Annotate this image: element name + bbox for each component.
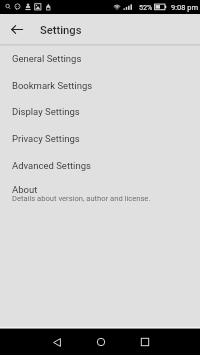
staticText: Display Settings xyxy=(12,106,80,117)
staticText: 9:08 pm xyxy=(171,3,199,12)
staticText: 52% xyxy=(139,3,153,11)
button[interactable]: Privacy Settings xyxy=(0,125,200,151)
staticText: Privacy Settings xyxy=(12,133,80,144)
staticText: Bookmark Settings xyxy=(12,80,93,91)
staticText: Advanced Settings xyxy=(12,160,91,171)
button[interactable]: Back xyxy=(0,14,34,44)
button[interactable]: Home xyxy=(86,329,115,355)
staticText: About xyxy=(12,184,38,195)
staticText: Settings xyxy=(40,24,82,37)
staticText: Details about version, author and licens… xyxy=(12,194,151,203)
button[interactable]: Recent apps xyxy=(130,329,159,355)
button[interactable]: About xyxy=(0,176,200,206)
button[interactable]: General Settings xyxy=(0,45,200,71)
staticText: General Settings xyxy=(12,53,82,64)
button[interactable]: Display Settings xyxy=(0,98,200,124)
button[interactable]: Bookmark Settings xyxy=(0,72,200,98)
button[interactable]: Back xyxy=(42,329,71,355)
button[interactable]: Advanced Settings xyxy=(0,152,200,178)
